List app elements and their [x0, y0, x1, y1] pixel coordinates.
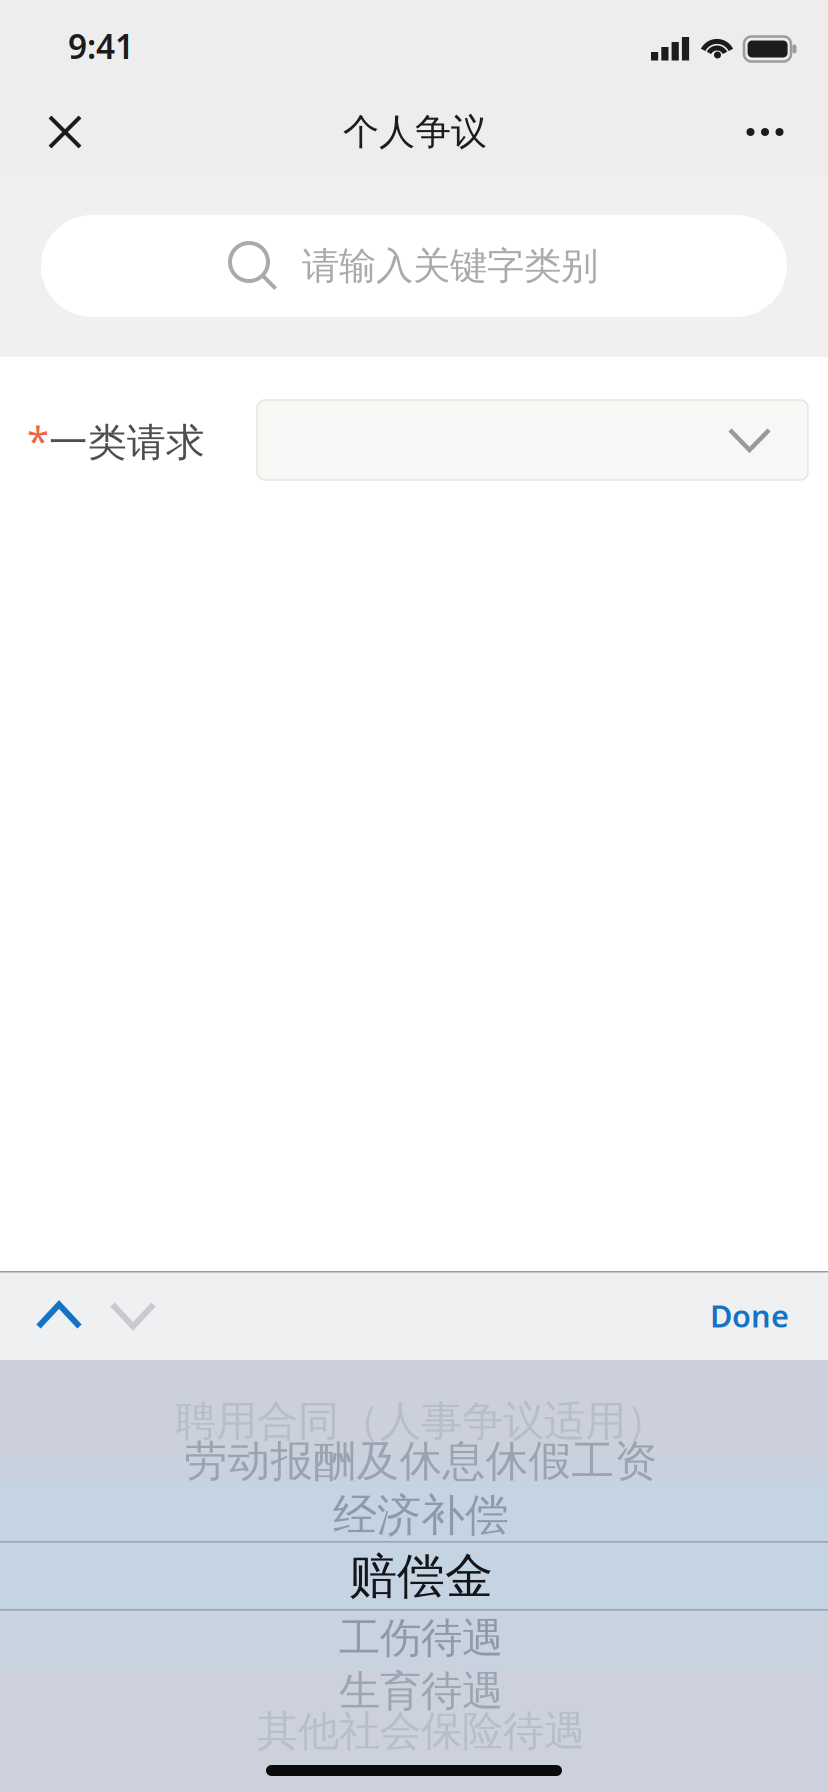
staticText: 其他社会保险待遇 [257, 1706, 585, 1757]
button[interactable]: Done [696, 1271, 803, 1360]
staticText: 赔偿金 [349, 1547, 493, 1606]
staticText: 经济补偿 [333, 1488, 509, 1542]
staticText: 生育待遇 [339, 1666, 503, 1717]
staticText: 个人争议 [343, 110, 487, 154]
button[interactable]: Next field [96, 1271, 170, 1360]
button[interactable]: 请输入关键字类别 [41, 215, 787, 317]
button[interactable]: Close [21, 88, 109, 176]
staticText: 工伤待遇 [339, 1613, 503, 1664]
staticText: 9:41 [68, 24, 134, 68]
button[interactable]: Previous field [22, 1271, 96, 1360]
staticText: 一类请求 [49, 419, 205, 466]
staticText: 请输入关键字类别 [302, 243, 598, 289]
button[interactable]: More options [721, 88, 809, 176]
staticText: 聘用合同（人事争议适用） [175, 1396, 667, 1447]
button[interactable]: Select claim category [257, 400, 808, 480]
staticText: * [27, 413, 49, 466]
staticText: Done [710, 1295, 789, 1336]
staticText: 劳动报酬及休息休假工资 [184, 1435, 657, 1488]
